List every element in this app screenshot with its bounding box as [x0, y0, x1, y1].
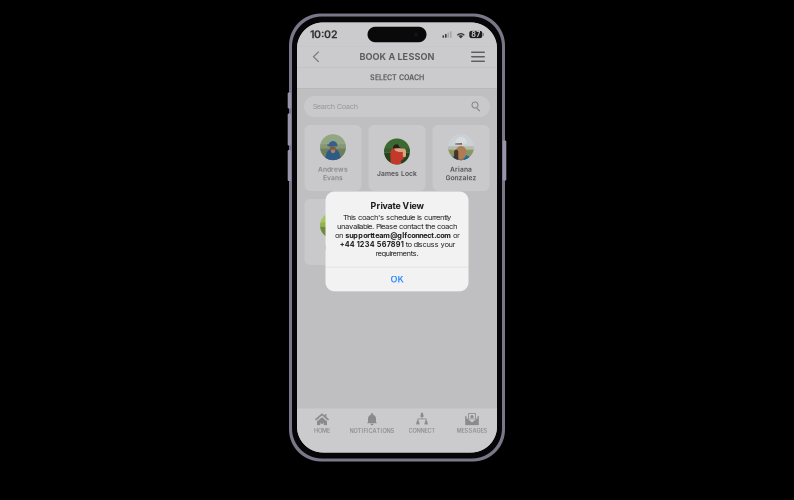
button[interactable]: OK — [325, 267, 468, 291]
staticText: BOOK A LESSON — [359, 51, 434, 62]
staticText: Evans — [323, 174, 343, 182]
button[interactable]: Back — [304, 46, 328, 67]
button[interactable]: NOTIFICATIONS — [347, 408, 397, 438]
staticText: Andrews — [318, 165, 348, 173]
staticText: MESSAGES — [456, 427, 487, 434]
button[interactable]: Andrews — [304, 125, 361, 191]
staticText: 10:02 — [310, 28, 338, 41]
staticText: OK — [390, 274, 403, 285]
button[interactable]: Ariana — [432, 125, 489, 191]
staticText: Private View — [370, 200, 423, 211]
staticText: James Lock — [377, 169, 417, 178]
staticText: Ariana — [450, 165, 472, 173]
staticText: Search Coach — [313, 102, 358, 111]
staticText: Mike — [325, 243, 341, 252]
button[interactable]: MESSAGES — [447, 408, 497, 438]
staticText: 87 — [471, 30, 480, 39]
button[interactable]: James Lock — [368, 125, 425, 191]
staticText: HOME — [314, 427, 330, 434]
button[interactable]: CONNECT — [397, 408, 447, 438]
staticText: This coach's schedule is currently unava… — [335, 213, 459, 258]
button[interactable]: Menu — [466, 46, 490, 67]
button[interactable]: Mike — [304, 199, 361, 265]
button[interactable]: HOME — [297, 408, 347, 438]
button[interactable]: Search Coach — [304, 96, 490, 117]
staticText: NOTIFICATIONS — [349, 428, 394, 434]
staticText: CONNECT — [408, 427, 435, 434]
staticText: SELECT COACH — [370, 73, 424, 82]
staticText: Gonzalez — [445, 174, 476, 182]
